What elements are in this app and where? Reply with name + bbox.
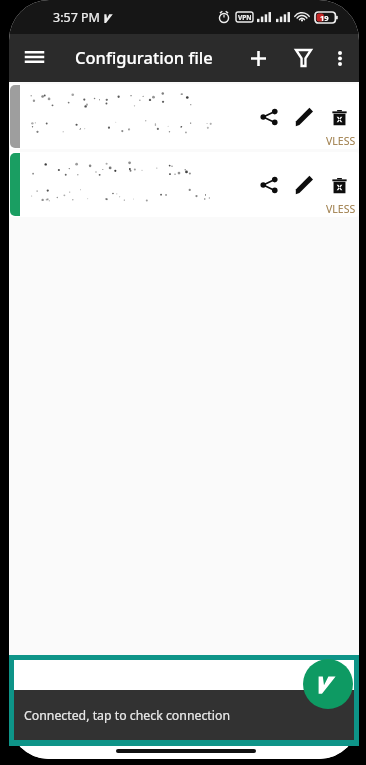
button[interactable]: Share [251, 99, 287, 135]
staticText: 3:57 PM [53, 9, 100, 26]
button[interactable]: Delete [323, 169, 356, 202]
staticText: Configuration file [75, 46, 213, 68]
button[interactable]: More options [323, 42, 356, 75]
button[interactable]: Add configuration [238, 38, 278, 78]
button[interactable]: Share [9, 152, 359, 217]
staticText: VPN [238, 13, 252, 22]
button[interactable]: Open navigation menu [17, 39, 52, 74]
button[interactable]: Connect [303, 659, 353, 709]
button[interactable]: Edit [287, 167, 323, 203]
button[interactable]: Share [9, 84, 359, 149]
button[interactable]: Share [251, 167, 287, 203]
button[interactable]: Connected, tap to check connection [14, 690, 354, 740]
staticText: VLESS [326, 202, 356, 216]
button[interactable]: Delete [323, 101, 356, 134]
button[interactable]: Filter [283, 38, 323, 78]
staticText: Connected, tap to check connection [24, 707, 230, 724]
button[interactable]: Edit [287, 99, 323, 135]
staticText: 19 [320, 13, 329, 23]
staticText: VLESS [326, 134, 356, 148]
